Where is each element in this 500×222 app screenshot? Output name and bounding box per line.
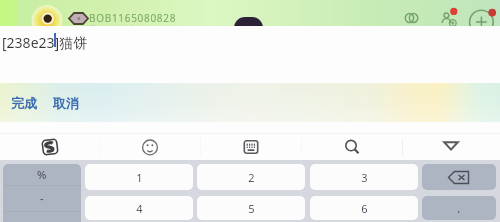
button[interactable]: Backspace: [422, 164, 496, 190]
staticText: 完成: [11, 95, 37, 111]
button[interactable]: Sogou input: [0, 133, 99, 160]
button[interactable]: 1: [85, 164, 193, 190]
staticText: Onesitei: [89, 22, 134, 36]
staticText: .: [457, 199, 461, 217]
button[interactable]: %: [3, 164, 81, 185]
staticText: 1: [136, 170, 143, 185]
button[interactable]: 取消: [45, 83, 90, 122]
staticText: 4: [136, 201, 143, 216]
staticText: -: [40, 191, 44, 206]
button[interactable]: Emoji: [99, 133, 200, 160]
button[interactable]: Search: [301, 133, 402, 160]
button[interactable]: 6: [310, 196, 418, 220]
button[interactable]: 3: [310, 164, 418, 190]
staticText: 2: [248, 170, 255, 185]
staticText: 5: [248, 201, 255, 216]
button[interactable]: Hide keyboard: [402, 133, 500, 160]
staticText: 取消: [53, 95, 79, 111]
button[interactable]: Add member: [438, 8, 460, 26]
button[interactable]: Add: [466, 8, 500, 26]
button[interactable]: 2: [197, 164, 305, 190]
staticText: %: [37, 167, 47, 182]
button[interactable]: Keyboard: [200, 133, 301, 160]
staticText: [238e23]猫饼: [2, 33, 88, 52]
button[interactable]: 5: [197, 196, 305, 220]
button[interactable]: 完成: [0, 83, 45, 122]
button[interactable]: 4: [85, 196, 193, 220]
button[interactable]: Share: [402, 10, 422, 26]
button[interactable]: -: [3, 186, 81, 211]
staticText: BOB1165080828: [89, 11, 177, 25]
staticText: 6: [361, 201, 368, 216]
staticText: 3: [361, 170, 368, 185]
button[interactable]: Period: [422, 196, 496, 220]
